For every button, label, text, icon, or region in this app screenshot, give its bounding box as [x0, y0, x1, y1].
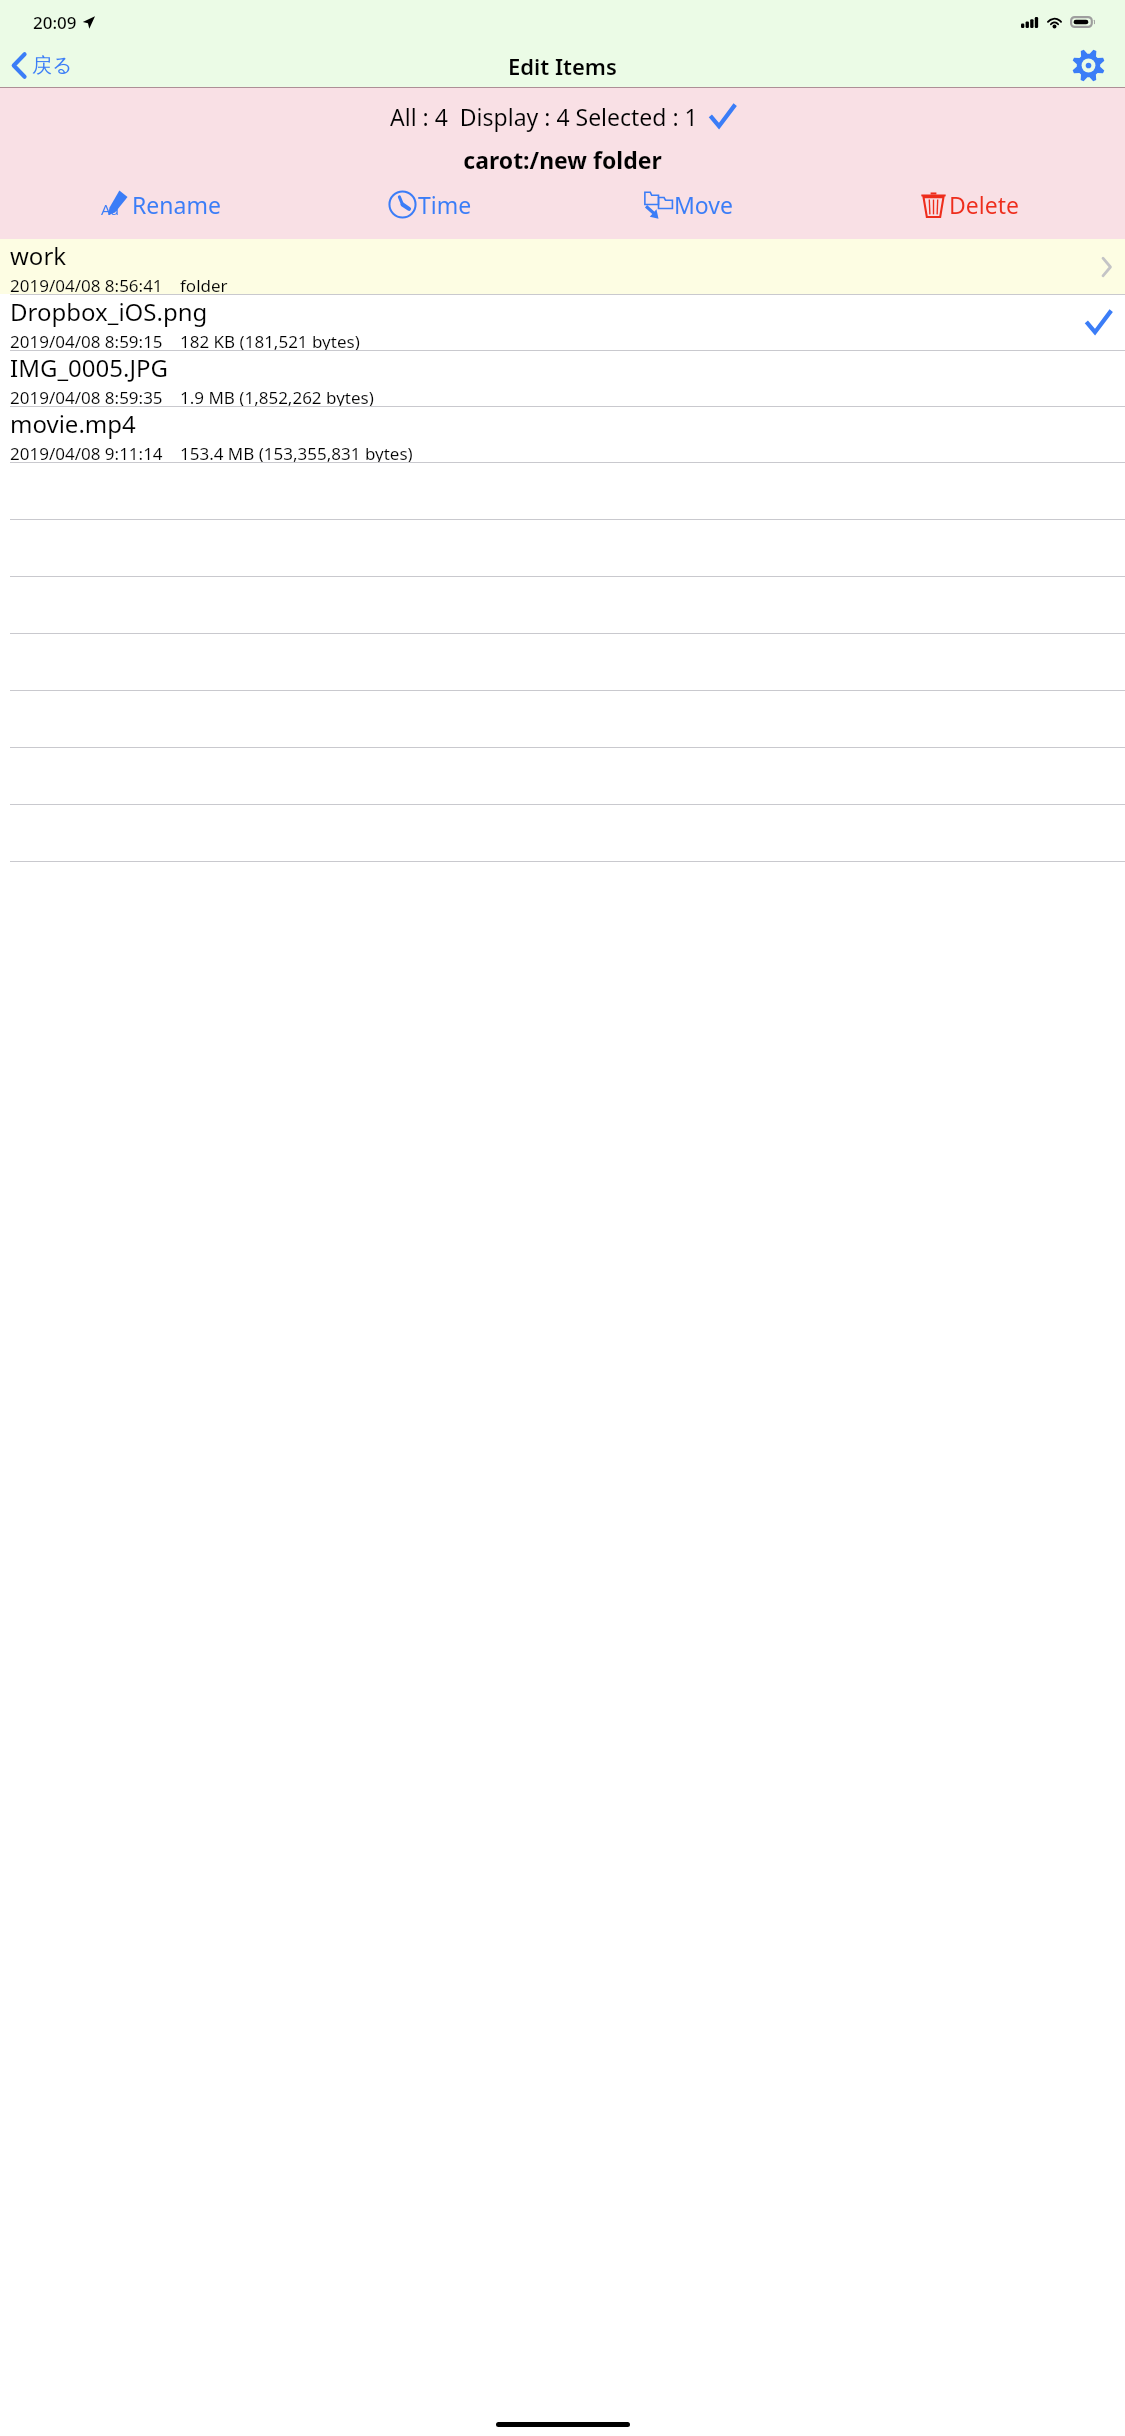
button[interactable]: movie.mp4	[0, 407, 1125, 462]
staticText: 1.9 MB (1,852,262 bytes)	[180, 386, 374, 406]
staticText: work	[10, 239, 67, 272]
staticText: 2019/04/08 8:56:41	[10, 274, 163, 294]
staticText: Dropbox_iOS.png	[10, 295, 208, 328]
staticText: Time	[418, 189, 472, 220]
staticText: 2019/04/08 9:11:14	[10, 442, 163, 462]
staticText: 153.4 MB (153,355,831 bytes)	[180, 442, 413, 462]
staticText: 2019/04/08 8:59:15	[10, 330, 163, 350]
staticText: IMG_0005.JPG	[10, 351, 168, 384]
button[interactable]: Dropbox_iOS.png	[0, 295, 1125, 350]
button[interactable]: Time	[309, 186, 551, 223]
staticText: 戻る	[32, 53, 73, 78]
staticText: Edit Items	[508, 51, 617, 81]
staticText: 20:09	[33, 11, 77, 34]
button[interactable]: work	[0, 239, 1125, 294]
button[interactable]: Aa	[13, 186, 309, 223]
button[interactable]: Select all	[709, 103, 736, 130]
staticText: 2019/04/08 8:59:35	[10, 386, 163, 406]
staticText: All : 4 Display : 4 Selected : 1	[390, 101, 698, 132]
staticText: 182 KB (181,521 bytes)	[180, 330, 360, 350]
staticText: Rename	[132, 189, 221, 220]
staticText: Delete	[949, 189, 1019, 220]
staticText: Aa	[101, 199, 120, 219]
staticText: Move	[674, 189, 733, 220]
button[interactable]: Settings	[1052, 44, 1125, 87]
staticText: folder	[180, 274, 228, 294]
button[interactable]: Move	[551, 186, 826, 223]
button[interactable]: Delete	[826, 186, 1112, 223]
staticText: movie.mp4	[10, 407, 136, 440]
staticText: carot:/new folder	[0, 144, 1125, 175]
button[interactable]: IMG_0005.JPG	[0, 351, 1125, 406]
button[interactable]: 戻る	[0, 48, 85, 83]
